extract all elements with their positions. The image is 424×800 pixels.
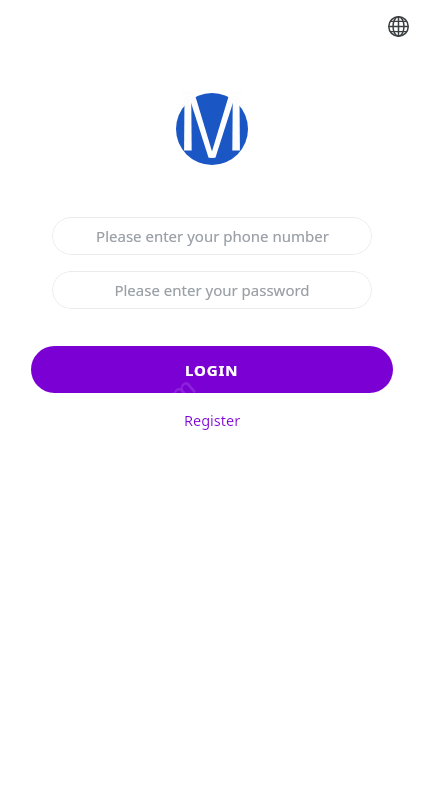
button[interactable]: Please enter your password — [52, 271, 372, 309]
button[interactable]: Change language — [380, 8, 416, 44]
button[interactable]: Please enter your phone number — [52, 217, 372, 255]
button[interactable]: Register — [174, 406, 251, 434]
button[interactable]: m. com — [31, 346, 393, 393]
staticText: m. com — [110, 368, 202, 393]
staticText: LOGIN — [185, 360, 239, 380]
staticText: Please enter your password — [114, 280, 310, 300]
staticText: Please enter your phone number — [96, 226, 329, 246]
staticText: Register — [184, 410, 241, 430]
